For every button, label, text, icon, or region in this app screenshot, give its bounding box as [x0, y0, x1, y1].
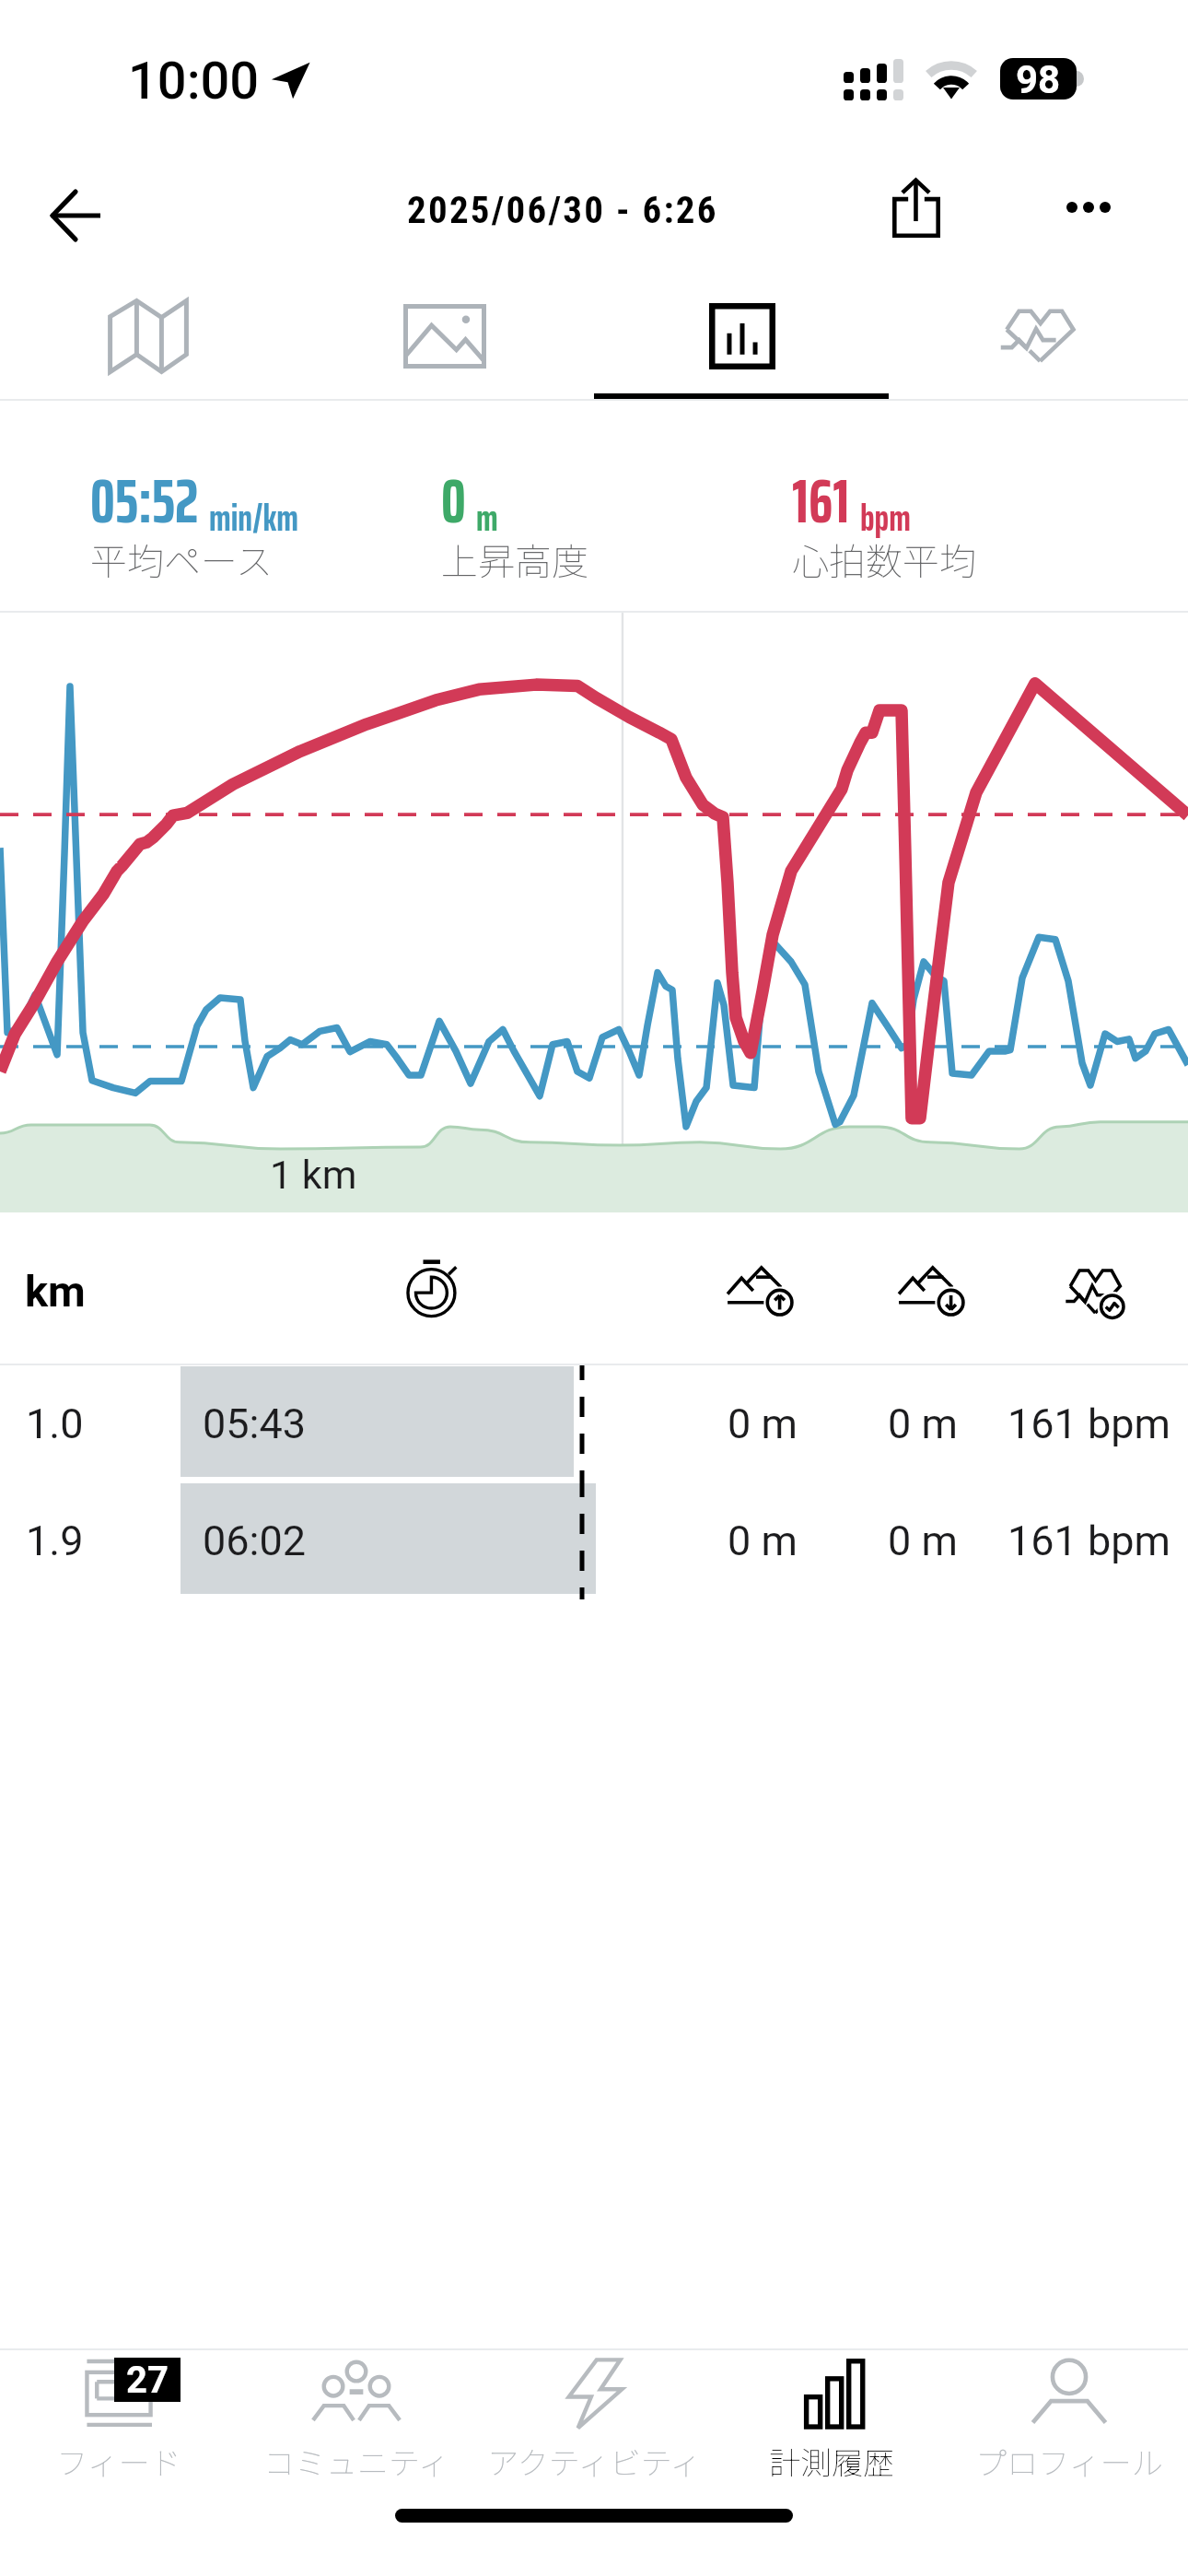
staticText: 1.0 [26, 1399, 84, 1448]
staticText: 計測履歴 [769, 2439, 894, 2484]
button[interactable]: アクティビティ [475, 2350, 713, 2484]
staticText: 05:43 [203, 1399, 307, 1448]
staticText: 心拍数平均 [792, 533, 976, 586]
staticText: m [476, 489, 498, 547]
button[interactable]: コミュニティ [238, 2350, 475, 2484]
staticText: 06:02 [203, 1516, 307, 1565]
staticText: 10:00 [128, 51, 260, 111]
staticText: 1 km [270, 1152, 357, 1198]
staticText: km [25, 1266, 86, 1317]
staticText: フィード [56, 2439, 181, 2484]
staticText: 0 [441, 452, 466, 549]
staticText: 0 m [728, 1516, 798, 1565]
staticText: min/km [209, 489, 298, 547]
staticText: 0 m [888, 1516, 958, 1565]
staticText: 27 [126, 2359, 169, 2402]
staticText: 05:52 [90, 452, 199, 549]
staticText: 161 [792, 452, 850, 549]
button[interactable]: Map tab [0, 269, 297, 399]
staticText: 98 [1016, 58, 1061, 99]
staticText: コミュニティ [263, 2439, 449, 2484]
staticText: 上昇高度 [441, 533, 588, 586]
button[interactable]: More options [1042, 151, 1135, 263]
button[interactable]: Photos tab [297, 269, 593, 399]
button[interactable]: 計測履歴 [713, 2350, 950, 2484]
staticText: 1.9 [26, 1516, 84, 1565]
button[interactable]: プロフィール [950, 2350, 1188, 2484]
staticText: 0 m [728, 1399, 798, 1448]
staticText: プロフィール [975, 2439, 1163, 2484]
button[interactable]: Share [870, 152, 962, 264]
staticText: 0 m [888, 1399, 958, 1448]
staticText: 平均ペース [90, 533, 273, 586]
staticText: bpm [860, 489, 911, 547]
staticText: 161 bpm [1007, 1399, 1171, 1448]
button[interactable]: Charts tab [593, 269, 891, 399]
staticText: アクティビティ [487, 2439, 702, 2484]
staticText: 2025/06/30 - 6:26 [407, 188, 718, 232]
button[interactable]: Back [31, 171, 120, 260]
button[interactable]: 27 [0, 2350, 238, 2484]
staticText: 161 bpm [1007, 1516, 1171, 1565]
button[interactable]: Heart rate tab [891, 269, 1188, 399]
